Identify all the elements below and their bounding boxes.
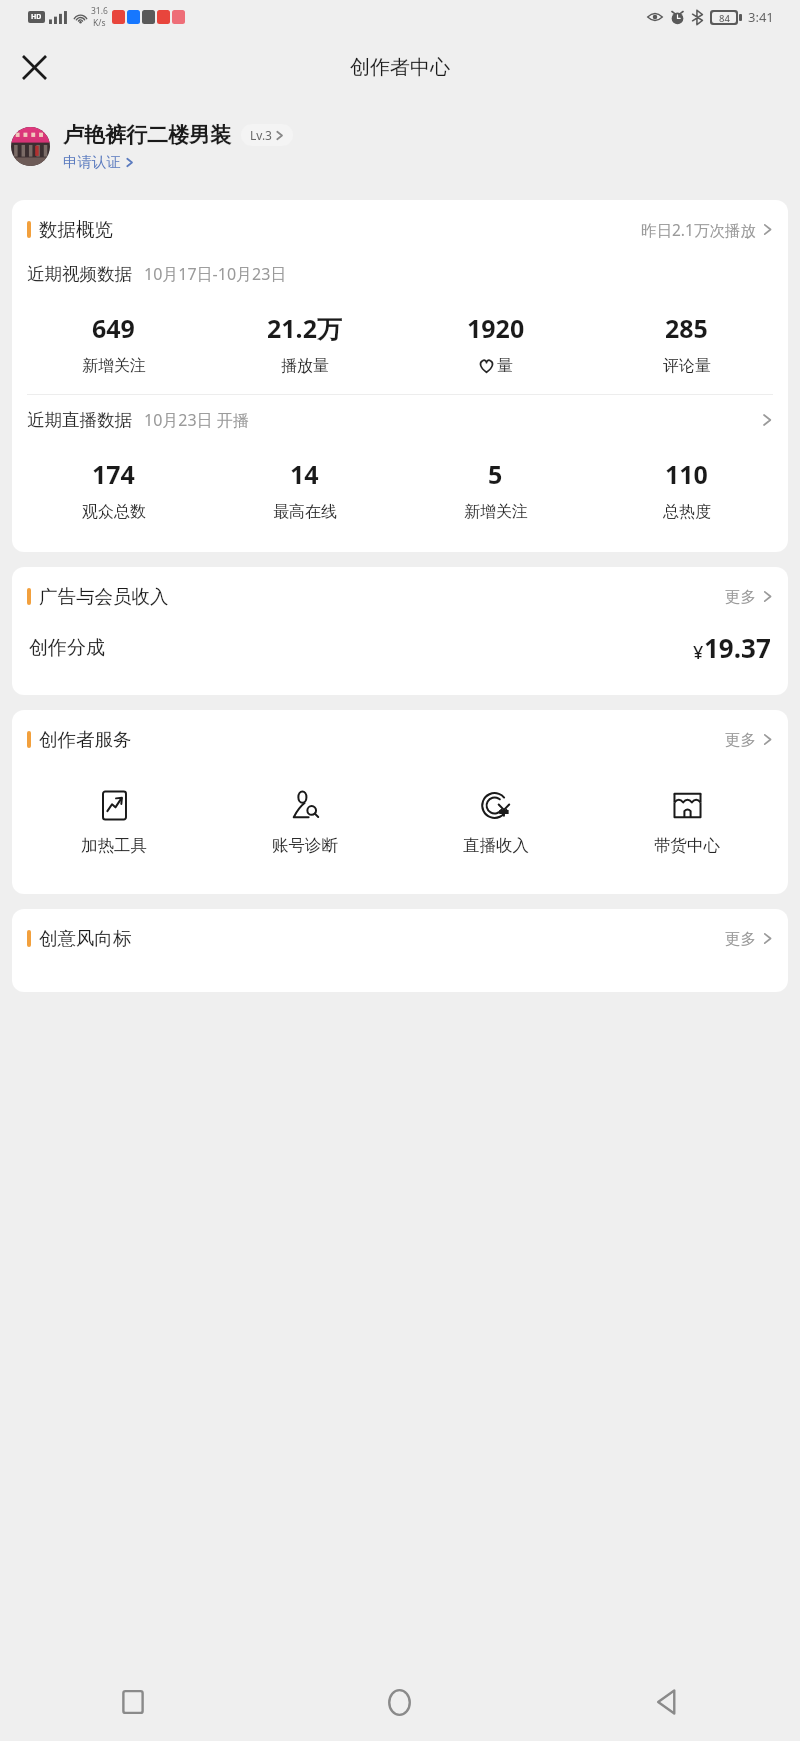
staticText: Lv.3 [250,127,272,143]
staticText: 申请认证 [63,153,121,171]
staticText: 总热度 [663,502,711,522]
staticText: 3:41 [748,8,774,26]
button[interactable]: 加热工具 [18,787,209,856]
button[interactable]: 14 [209,457,400,522]
button[interactable]: 5 [400,457,591,522]
button[interactable]: 649 [18,311,209,376]
button[interactable]: 申请认证 [63,153,134,171]
staticText: 带货中心 [654,835,720,856]
button[interactable]: Home [266,1663,533,1741]
staticText: 创意风向标 [39,927,132,950]
staticText: 创作者服务 [39,728,132,751]
staticText: 19.37 [704,630,771,665]
staticText: 新增关注 [82,356,146,376]
staticText: 最高在线 [273,502,337,522]
button[interactable]: 285 [591,311,782,376]
button[interactable]: 卢艳裤行二楼男装 [0,100,800,192]
staticText: 近期视频数据 [27,263,132,285]
staticText: 5 [488,457,503,491]
staticText: HD [31,12,42,22]
staticText: 评论量 [663,356,711,376]
button[interactable]: 创作者服务 [12,710,788,769]
staticText: 创作者中心 [350,55,450,80]
staticText: 更多 [725,730,756,750]
staticText: 量 [497,356,513,376]
staticText: 更多 [725,587,756,607]
staticText: 直播收入 [463,835,529,856]
staticText: 110 [665,457,708,491]
button[interactable]: 账号诊断 [209,787,400,856]
button[interactable]: 近期直播数据 [12,409,788,431]
button[interactable]: 广告与会员收入 [12,567,788,626]
button[interactable]: 创作分成 [12,626,788,695]
staticText: 174 [92,457,135,491]
button[interactable]: 174 [18,457,209,522]
button[interactable]: 21.2万 [209,311,400,376]
staticText: 新增关注 [464,502,528,522]
staticText: 1920 [467,311,525,345]
staticText: 数据概览 [39,218,113,241]
staticText: 10月23日 开播 [144,409,249,431]
staticText: 广告与会员收入 [39,585,169,608]
staticText: 昨日2.1万次播放 [641,219,756,240]
staticText: 285 [665,311,708,345]
button[interactable]: Recents [0,1663,266,1741]
staticText: 创作分成 [29,636,105,660]
staticText: 14 [290,457,319,491]
button[interactable]: 110 [591,457,782,522]
button[interactable]: 创意风向标 [12,909,788,968]
staticText: 加热工具 [81,835,147,856]
staticText: 账号诊断 [272,835,338,856]
button[interactable]: 带货中心 [591,787,782,856]
staticText: K/s [93,17,106,29]
staticText: 播放量 [281,356,329,376]
staticText: 10月17日-10月23日 [144,263,287,285]
button[interactable]: 1920 [400,311,591,376]
staticText: 近期直播数据 [27,409,132,431]
staticText: 31.6 [91,5,108,17]
button[interactable]: Back [533,1663,800,1741]
staticText: 649 [92,311,135,345]
button[interactable]: 直播收入 [400,787,591,856]
staticText: 卢艳裤行二楼男装 [63,122,231,148]
staticText: ¥ [693,640,704,665]
staticText: 更多 [725,929,756,949]
button[interactable]: 数据概览 [12,200,788,259]
button[interactable]: Close [10,43,58,91]
staticText: 84 [719,12,730,23]
staticText: 21.2万 [267,311,342,345]
staticText: 观众总数 [82,502,146,522]
